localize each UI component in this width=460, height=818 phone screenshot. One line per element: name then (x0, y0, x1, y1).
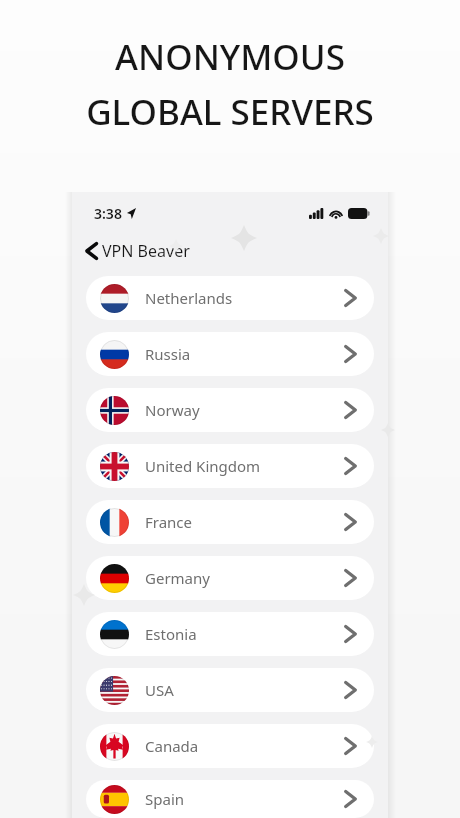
button[interactable]: Germany (86, 556, 374, 600)
button[interactable]: Netherlands (86, 276, 374, 320)
staticText: Estonia (145, 624, 197, 644)
staticText: 3:38 (94, 204, 122, 223)
staticText: USA (145, 680, 174, 700)
staticText: Germany (145, 568, 210, 588)
staticText: Canada (145, 736, 199, 756)
button[interactable]: Norway (86, 388, 374, 432)
button[interactable]: USA (86, 668, 374, 712)
other: Back (84, 241, 100, 261)
staticText: Netherlands (145, 288, 233, 308)
button[interactable]: France (86, 500, 374, 544)
button[interactable]: Estonia (86, 612, 374, 656)
button[interactable]: Spain (86, 780, 374, 818)
staticText: ANONYMOUS (115, 33, 345, 81)
staticText: Norway (145, 400, 200, 420)
staticText: United Kingdom (145, 456, 261, 476)
staticText: Russia (145, 344, 191, 364)
staticText: France (145, 512, 193, 532)
button[interactable]: Canada (86, 724, 374, 768)
staticText: GLOBAL SERVERS (86, 88, 374, 136)
button[interactable]: Back (72, 234, 388, 268)
button[interactable]: United Kingdom (86, 444, 374, 488)
staticText: Spain (145, 789, 185, 809)
staticText: VPN Beaver (102, 240, 190, 262)
button[interactable]: Russia (86, 332, 374, 376)
